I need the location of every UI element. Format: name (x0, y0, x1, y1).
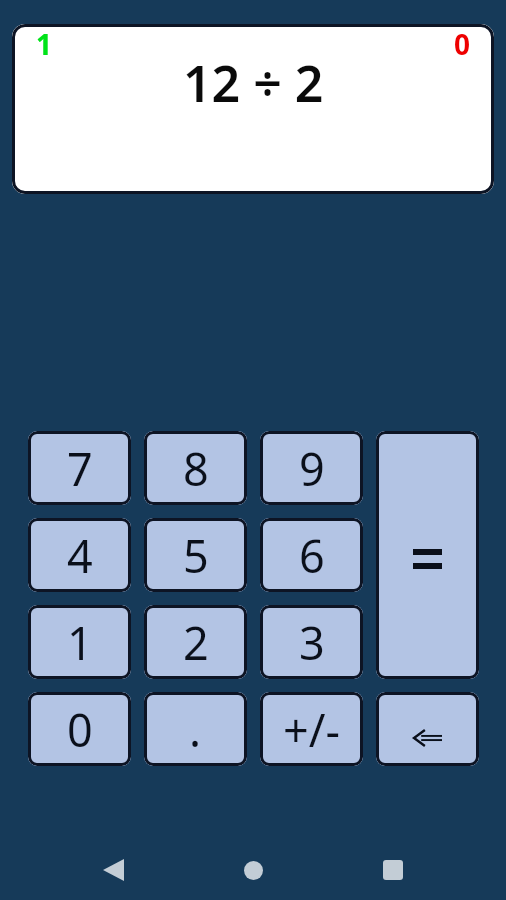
button[interactable]: 2 (144, 605, 247, 679)
staticText: 7 (67, 438, 93, 499)
button[interactable]: 9 (260, 431, 363, 505)
staticText: 3 (299, 612, 325, 673)
button[interactable]: +/- (260, 692, 363, 766)
button[interactable]: Backspace (376, 692, 479, 766)
button[interactable]: Equals (376, 431, 479, 679)
button[interactable]: Back (89, 846, 137, 894)
button[interactable]: . (144, 692, 247, 766)
staticText: 2 (183, 612, 209, 673)
staticText: 8 (183, 438, 209, 499)
button[interactable]: 1 (28, 605, 131, 679)
staticText: 5 (183, 525, 209, 586)
staticText: 4 (67, 525, 93, 586)
staticText: . (189, 699, 202, 760)
staticText: 0 (454, 25, 471, 63)
button[interactable]: Home (229, 846, 277, 894)
button[interactable]: 5 (144, 518, 247, 592)
staticText: 1 (67, 612, 93, 673)
staticText: 1 (36, 25, 53, 63)
button[interactable]: 3 (260, 605, 363, 679)
button[interactable]: 7 (28, 431, 131, 505)
button[interactable]: 8 (144, 431, 247, 505)
button[interactable]: 0 (28, 692, 131, 766)
staticText: 9 (299, 438, 325, 499)
button[interactable]: 6 (260, 518, 363, 592)
button[interactable]: Recent apps (369, 846, 417, 894)
staticText: +/- (283, 699, 340, 760)
staticText: 0 (67, 699, 93, 760)
staticText: 6 (299, 525, 325, 586)
staticText: 12 ÷ 2 (183, 49, 324, 117)
button[interactable]: 4 (28, 518, 131, 592)
